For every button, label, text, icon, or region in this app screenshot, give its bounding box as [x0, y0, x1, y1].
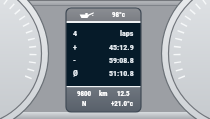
staticText: +	[73, 43, 77, 52]
button[interactable]: Oil temperature	[66, 8, 141, 112]
staticText: 59:08.8	[109, 56, 134, 65]
staticText: 45:12.9	[109, 43, 134, 52]
staticText: 12.5	[117, 90, 130, 98]
staticText: 98°c	[112, 11, 126, 19]
staticText: Ø	[73, 69, 78, 78]
staticText: laps	[120, 29, 134, 38]
staticText: 9800	[77, 90, 92, 98]
staticText: N	[82, 100, 87, 108]
staticText: 4	[73, 29, 78, 38]
staticText: km	[99, 90, 108, 98]
staticText: -	[73, 56, 76, 65]
other: Oil temperature	[79, 12, 94, 18]
staticText: +21.0°c	[111, 100, 133, 108]
staticText: 51:10.8	[109, 69, 134, 78]
